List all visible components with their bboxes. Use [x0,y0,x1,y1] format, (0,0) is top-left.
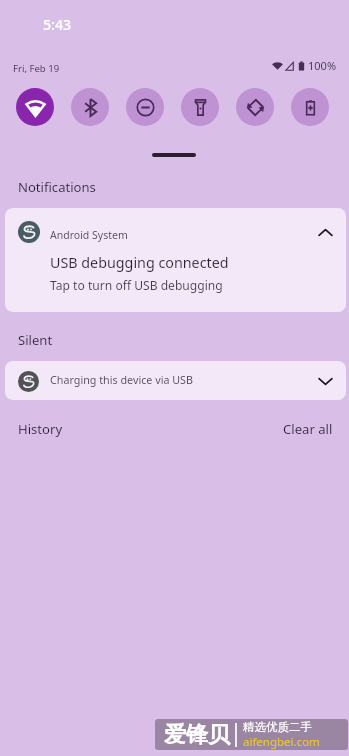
staticText: USB debugging connected [50,253,229,272]
staticText: Charging this device via USB [50,373,193,388]
button[interactable]: Auto rotate [236,88,274,126]
button[interactable]: Bluetooth [71,88,109,126]
button[interactable]: Expand notification [312,368,338,394]
staticText: Clear all [283,420,333,438]
button[interactable]: Clear all [275,414,341,444]
staticText: 5:43 [43,15,72,34]
staticText: Fri, Feb 19 [13,62,60,75]
button[interactable]: Do not disturb [126,88,164,126]
staticText: Tap to turn off USB debugging [50,277,223,293]
button[interactable]: Charging this device via USB [5,361,346,400]
button[interactable]: Flashlight [181,88,219,126]
staticText: Silent [18,331,53,349]
staticText: History [18,420,63,438]
staticText: Notifications [18,178,96,196]
staticText: 爱锋贝 [164,721,230,749]
staticText: aifengbei.com [243,734,320,750]
button[interactable]: Collapse notification [312,219,338,245]
button[interactable]: Battery saver [291,88,329,126]
staticText: 精选优质二手 [243,720,312,734]
staticText: 100% [308,58,337,73]
staticText: Android System [50,228,128,242]
button[interactable]: History [10,414,71,444]
button[interactable]: Wi-Fi [16,88,54,126]
button[interactable]: Android System [5,208,346,312]
